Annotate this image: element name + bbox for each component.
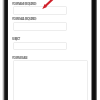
staticText: SUBJECT bbox=[12, 37, 20, 41]
other: Annotation arrow bbox=[41, 0, 54, 10]
staticText: YOUR EMAIL (REQUIRED) bbox=[12, 17, 36, 21]
staticText: YOUR NAME (REQUIRED) bbox=[12, 2, 36, 6]
staticText: YOUR MESSAGE bbox=[12, 56, 28, 60]
button[interactable] bbox=[13, 22, 67, 31]
button[interactable] bbox=[13, 60, 88, 100]
button[interactable] bbox=[13, 6, 67, 15]
button[interactable] bbox=[13, 42, 67, 50]
